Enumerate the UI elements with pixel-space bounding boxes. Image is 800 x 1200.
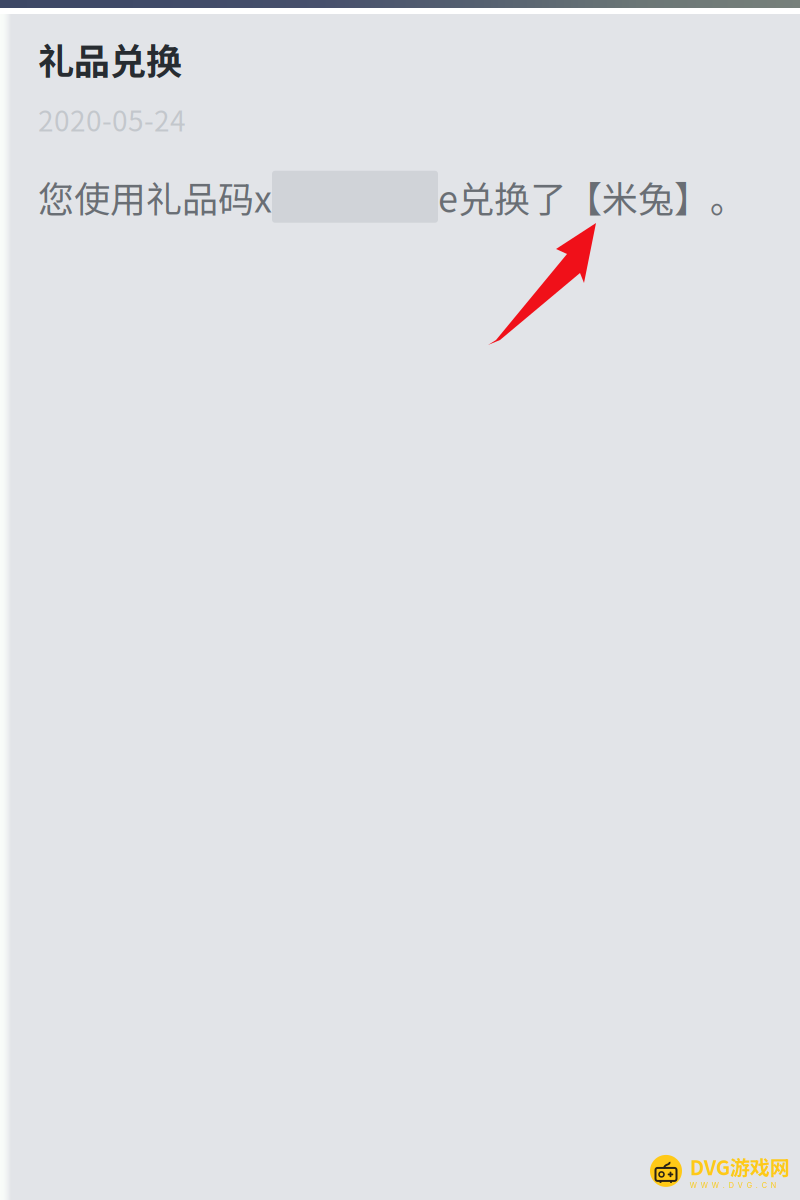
- button[interactable]: DVG游戏网 www.dvg.cn: [650, 1152, 790, 1190]
- staticText: DVG游戏网: [690, 1152, 790, 1181]
- staticText: e兑换了【米兔】。: [438, 171, 746, 223]
- staticText: 礼品兑换: [38, 33, 182, 85]
- button[interactable]: 礼品兑换: [0, 0, 800, 249]
- staticText: 您使用礼品码x: [38, 171, 272, 223]
- staticText: W W W . D V G . C N: [690, 1181, 777, 1190]
- staticText: 2020-05-24: [38, 99, 186, 140]
